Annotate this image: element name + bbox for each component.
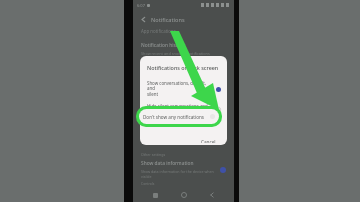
button[interactable]: Back — [206, 189, 218, 201]
button[interactable]: Don't show any notifications — [139, 109, 219, 124]
button[interactable]: Show data information — [141, 160, 226, 179]
button[interactable]: Home — [178, 189, 190, 201]
staticText: Show data information — [141, 160, 194, 167]
staticText: Notifications on lock screen — [147, 64, 219, 71]
staticText: Show data information for the device whe… — [141, 169, 214, 179]
staticText: Don't show any notifications — [143, 114, 204, 120]
staticText: Show recent and snoozed notifications — [141, 51, 210, 56]
staticText: Cancel — [201, 139, 216, 143]
button[interactable]: Cancel — [198, 137, 219, 145]
staticText: Controls — [141, 181, 155, 186]
button[interactable]: Show conversations, default, and silent — [140, 79, 227, 99]
button[interactable]: Hide silent conversations and notificati… — [140, 102, 227, 116]
button[interactable]: Notification history — [141, 42, 210, 56]
staticText: Other settings — [141, 152, 166, 157]
staticText: Show conversations, default, and silent — [147, 80, 213, 98]
staticText: Hide silent conversations and notificati… — [147, 103, 213, 115]
staticText: 6:07 — [137, 3, 145, 8]
staticText: App notifications — [141, 28, 176, 34]
button[interactable]: Recents — [149, 189, 161, 201]
button[interactable]: Back — [137, 13, 149, 25]
staticText: Notification history — [141, 42, 186, 49]
staticText: Notifications — [151, 16, 185, 23]
